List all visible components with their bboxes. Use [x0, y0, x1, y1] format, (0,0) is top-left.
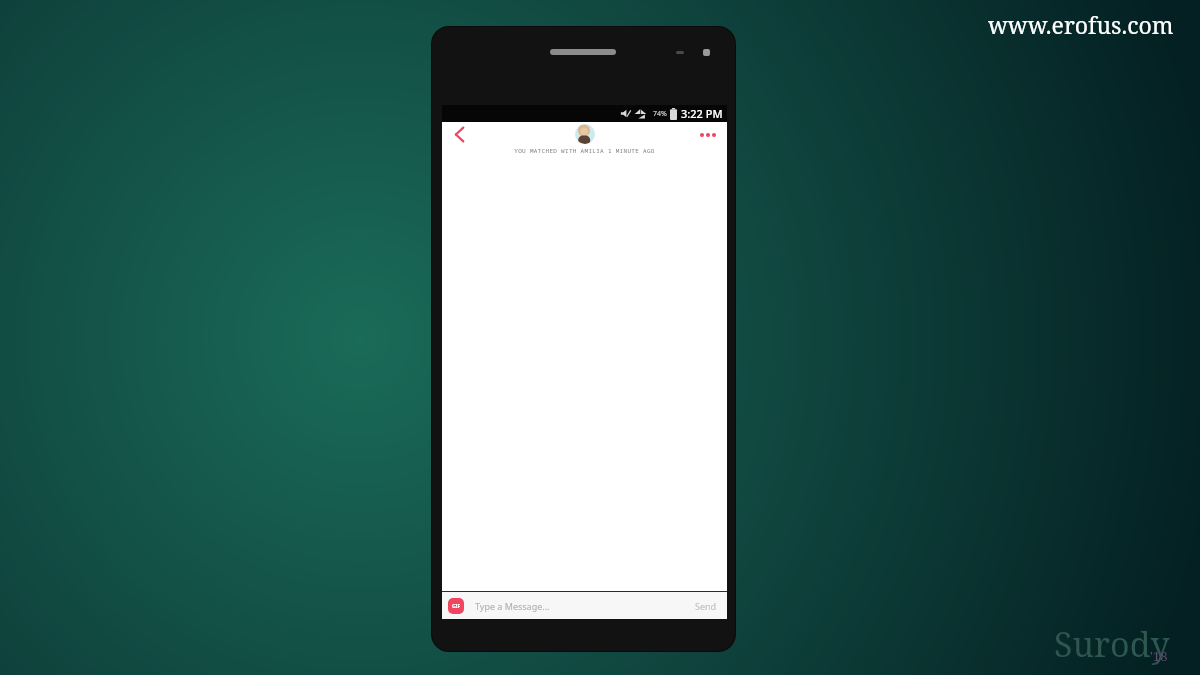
- button[interactable]: More options: [695, 128, 721, 142]
- staticText: Type a Message...: [475, 600, 550, 612]
- button[interactable]: Back: [446, 122, 472, 146]
- button[interactable]: Profile photo: [575, 124, 595, 144]
- staticText: 3:22 PM: [681, 106, 723, 121]
- staticText: Surody: [1054, 621, 1170, 667]
- button[interactable]: Type a Message...: [475, 592, 695, 619]
- staticText: www.erofus.com: [988, 9, 1174, 40]
- staticText: Send: [695, 600, 717, 612]
- button[interactable]: Send GIF: [448, 598, 464, 614]
- staticText: YOU MATCHED WITH AMILIA 1 MINUTE AGO: [442, 147, 727, 155]
- staticText: 74%: [653, 109, 667, 119]
- button[interactable]: Send: [695, 600, 717, 612]
- staticText: GIF: [452, 603, 461, 610]
- staticText: '18: [1150, 647, 1168, 665]
